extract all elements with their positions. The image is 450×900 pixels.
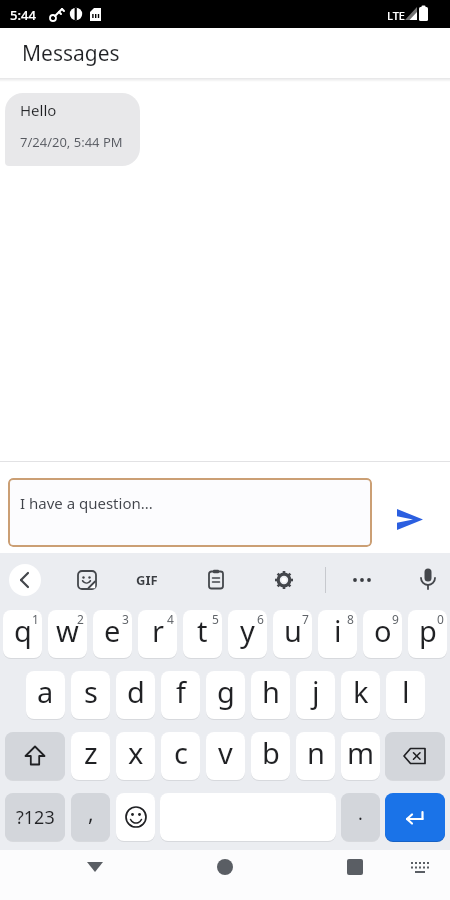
staticText: LTE <box>387 8 405 23</box>
button[interactable] <box>274 570 294 590</box>
button[interactable] <box>340 853 370 881</box>
staticText: p <box>419 611 437 650</box>
button[interactable]: i <box>318 610 357 658</box>
staticText: h <box>262 672 280 711</box>
staticText: j <box>312 672 320 711</box>
button[interactable]: q <box>3 610 42 658</box>
staticText: z <box>84 733 98 772</box>
button[interactable] <box>207 569 225 590</box>
button[interactable]: z <box>71 732 110 780</box>
button[interactable]: Hello <box>5 93 140 166</box>
button[interactable]: d <box>116 671 155 719</box>
staticText: t <box>197 611 208 650</box>
staticText: 4 <box>167 611 174 627</box>
button[interactable] <box>116 793 155 841</box>
staticText: w <box>56 611 79 650</box>
button[interactable]: w <box>48 610 87 658</box>
staticText: , <box>88 799 94 828</box>
staticText: 0 <box>437 611 444 627</box>
button[interactable]: f <box>161 671 200 719</box>
staticText: Hello <box>20 100 57 120</box>
staticText: 7/24/20, 5:44 PM <box>20 133 123 151</box>
staticText: 5:44 <box>10 6 36 24</box>
button[interactable]: x <box>116 732 155 780</box>
staticText: e <box>104 611 121 650</box>
staticText: i <box>334 611 342 650</box>
staticText: 2 <box>77 611 84 627</box>
button[interactable]: , <box>71 793 110 841</box>
staticText: k <box>353 672 369 711</box>
staticText: a <box>37 672 54 711</box>
button[interactable]: m <box>341 732 380 780</box>
button[interactable]: ?123 <box>5 793 65 841</box>
staticText: q <box>14 611 32 650</box>
staticText: m <box>347 733 375 772</box>
button[interactable]: p <box>408 610 447 658</box>
button[interactable]: c <box>161 732 200 780</box>
button[interactable]: y <box>228 610 267 658</box>
button[interactable]: l <box>386 671 425 719</box>
button[interactable] <box>392 504 426 532</box>
button[interactable]: I have a question... <box>8 478 372 547</box>
staticText: 7 <box>302 611 309 627</box>
button[interactable]: e <box>93 610 132 658</box>
staticText: Messages <box>22 39 120 68</box>
button[interactable]: t <box>183 610 222 658</box>
button[interactable] <box>210 853 240 881</box>
button[interactable]: b <box>251 732 290 780</box>
button[interactable] <box>77 570 97 590</box>
staticText: n <box>307 733 325 772</box>
button[interactable]: s <box>71 671 110 719</box>
staticText: GIF <box>136 571 158 589</box>
button[interactable] <box>406 855 434 879</box>
button[interactable]: a <box>26 671 65 719</box>
staticText: u <box>284 611 302 650</box>
staticText: b <box>262 733 280 772</box>
button[interactable] <box>5 732 65 780</box>
button[interactable] <box>385 793 445 841</box>
staticText: o <box>374 611 392 650</box>
button[interactable]: h <box>251 671 290 719</box>
button[interactable]: k <box>341 671 380 719</box>
staticText: r <box>152 611 164 650</box>
button[interactable]: j <box>296 671 335 719</box>
staticText: I have a question... <box>20 493 153 513</box>
staticText: 9 <box>392 611 399 627</box>
staticText: 8 <box>347 611 354 627</box>
button[interactable]: v <box>206 732 245 780</box>
staticText: ?123 <box>16 805 55 830</box>
staticText: 5 <box>212 611 219 627</box>
staticText: g <box>217 672 235 711</box>
staticText: . <box>358 801 363 826</box>
staticText: s <box>84 672 98 711</box>
button[interactable]: n <box>296 732 335 780</box>
staticText: 3 <box>122 611 129 627</box>
staticText: d <box>127 672 145 711</box>
button[interactable]: GIF <box>136 571 158 589</box>
staticText: x <box>128 733 144 772</box>
staticText: c <box>174 733 188 772</box>
staticText: y <box>240 611 255 650</box>
button[interactable]: g <box>206 671 245 719</box>
staticText: 1 <box>32 611 39 627</box>
button[interactable] <box>80 853 110 881</box>
staticText: f <box>176 672 186 711</box>
staticText: 6 <box>257 611 264 627</box>
button[interactable] <box>352 576 372 584</box>
staticText: l <box>402 672 410 711</box>
button[interactable] <box>419 567 437 593</box>
button[interactable]: o <box>363 610 402 658</box>
button[interactable]: . <box>341 793 380 841</box>
staticText: v <box>218 733 233 772</box>
button[interactable] <box>385 732 445 780</box>
button[interactable]: u <box>273 610 312 658</box>
button[interactable] <box>9 564 41 596</box>
button[interactable]: r <box>138 610 177 658</box>
